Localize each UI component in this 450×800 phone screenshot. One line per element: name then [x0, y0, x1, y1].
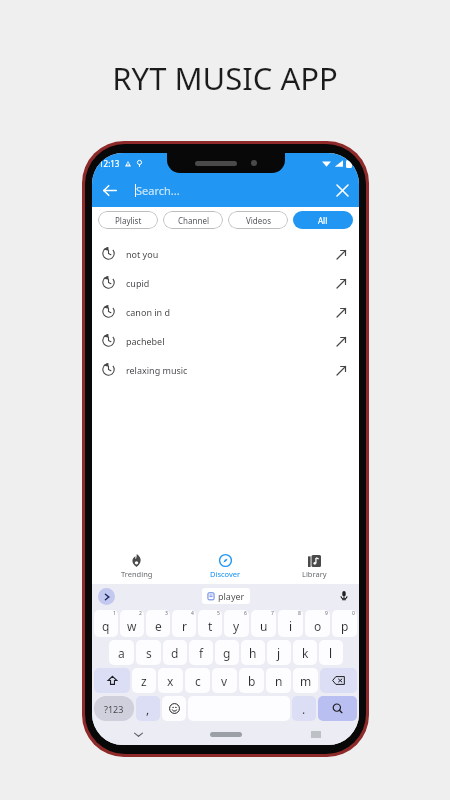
button[interactable]: Search	[318, 696, 357, 721]
staticText: k	[302, 645, 309, 661]
button[interactable]: Switch keyboard	[309, 727, 323, 741]
button[interactable]: f	[189, 640, 213, 665]
staticText: 7	[271, 610, 274, 617]
button[interactable]: Channel	[163, 211, 223, 229]
button[interactable]: Home	[210, 732, 242, 737]
button[interactable]: 2	[120, 610, 144, 637]
staticText: b	[248, 673, 256, 689]
button[interactable]: cupid	[92, 268, 359, 297]
staticText: canon in d	[126, 306, 171, 318]
button[interactable]: c	[185, 668, 210, 693]
button[interactable]: Trending	[92, 548, 181, 584]
staticText: 0	[352, 610, 355, 617]
button[interactable]: s	[136, 640, 161, 665]
button[interactable]: Shift	[94, 668, 130, 693]
button[interactable]: Insert not you	[333, 246, 349, 262]
staticText: 12:13	[99, 158, 120, 169]
button[interactable]: Insert cupid	[333, 275, 349, 291]
staticText: w	[127, 618, 137, 634]
staticText: relaxing music	[126, 364, 188, 376]
staticText: ,	[146, 701, 150, 717]
staticText: a	[118, 645, 125, 661]
button[interactable]: 1	[94, 610, 118, 637]
staticText: u	[260, 618, 268, 634]
button[interactable]: Insert pachebel	[333, 333, 349, 349]
button[interactable]: Backspace	[320, 668, 357, 693]
staticText: 6	[244, 610, 247, 617]
button[interactable]: ,	[136, 696, 160, 721]
staticText: ?123	[104, 703, 124, 715]
staticText: 9	[325, 610, 328, 617]
staticText: p	[341, 618, 349, 634]
staticText: Discover	[210, 569, 241, 579]
button[interactable]: 5	[198, 610, 222, 637]
staticText: t	[208, 618, 213, 634]
button[interactable]: relaxing music	[92, 355, 359, 384]
button[interactable]: Videos	[228, 211, 288, 229]
staticText: y	[233, 618, 240, 634]
staticText: x	[167, 673, 174, 689]
staticText: c	[195, 673, 201, 689]
staticText: s	[146, 645, 152, 661]
button[interactable]: v	[212, 668, 237, 693]
button[interactable]: More	[98, 588, 115, 605]
button[interactable]: Discover	[181, 548, 270, 584]
button[interactable]: Voice input	[336, 588, 352, 604]
button[interactable]: ?123	[94, 696, 134, 721]
button[interactable]: a	[109, 640, 134, 665]
button[interactable]: Hide keyboard	[130, 726, 146, 742]
button[interactable]: Playlist	[98, 211, 158, 229]
staticText: j	[277, 645, 281, 661]
button[interactable]: h	[241, 640, 265, 665]
staticText: All	[318, 215, 328, 226]
staticText: o	[314, 618, 322, 634]
button[interactable]: Clear	[325, 173, 359, 207]
button[interactable]: Emoji	[162, 696, 186, 721]
staticText: 4	[191, 610, 194, 617]
button[interactable]: 6	[224, 610, 249, 637]
button[interactable]: k	[293, 640, 317, 665]
button[interactable]: 9	[305, 610, 330, 637]
staticText: 8	[298, 610, 301, 617]
button[interactable]: n	[266, 668, 291, 693]
button[interactable]: pachebel	[92, 326, 359, 355]
button[interactable]: player	[202, 588, 250, 604]
staticText: 2	[139, 610, 142, 617]
staticText: d	[171, 645, 179, 661]
button[interactable]: x	[158, 668, 183, 693]
button[interactable]: All	[293, 211, 353, 229]
button[interactable]: l	[319, 640, 343, 665]
staticText: 3	[165, 610, 168, 617]
staticText: pachebel	[126, 335, 165, 347]
staticText: z	[141, 673, 147, 689]
staticText: i	[289, 618, 293, 634]
staticText: .	[302, 701, 306, 717]
button[interactable]: Insert relaxing music	[333, 362, 349, 378]
button[interactable]: not you	[92, 239, 359, 268]
staticText: player	[218, 590, 245, 602]
button[interactable]: 8	[278, 610, 303, 637]
staticText: e	[155, 618, 162, 634]
staticText: m	[300, 673, 312, 689]
button[interactable]: 0	[332, 610, 357, 637]
button[interactable]: Back	[92, 173, 126, 207]
button[interactable]: 4	[172, 610, 196, 637]
button[interactable]: 3	[146, 610, 170, 637]
button[interactable]: j	[267, 640, 291, 665]
button[interactable]: Insert canon in d	[333, 304, 349, 320]
staticText: f	[199, 645, 204, 661]
button[interactable]: g	[215, 640, 239, 665]
button[interactable]: Library	[270, 548, 359, 584]
button[interactable]: .	[292, 696, 316, 721]
staticText: h	[249, 645, 257, 661]
button[interactable]: d	[163, 640, 187, 665]
button[interactable]: m	[293, 668, 318, 693]
staticText: Playlist	[115, 215, 142, 226]
staticText: RYT MUSIC APP	[112, 57, 338, 99]
button[interactable]: b	[239, 668, 264, 693]
button[interactable]: canon in d	[92, 297, 359, 326]
button[interactable]: z	[132, 668, 156, 693]
button[interactable]: 7	[251, 610, 276, 637]
staticText: q	[102, 618, 110, 634]
